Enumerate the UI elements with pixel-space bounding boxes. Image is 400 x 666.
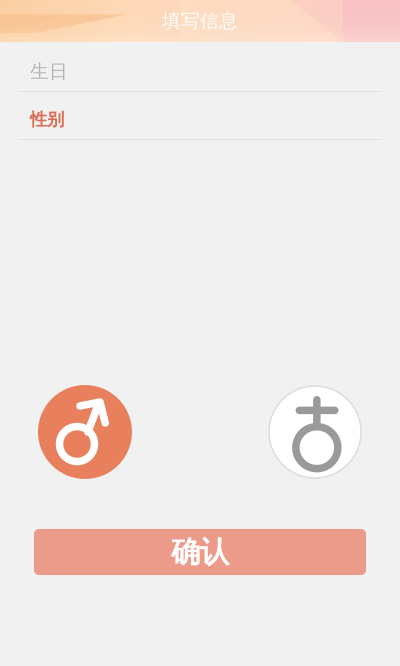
button[interactable]: Female — [268, 385, 362, 479]
staticText: 填写信息 — [162, 9, 238, 32]
button[interactable]: Male — [38, 385, 132, 479]
staticText: 确认 — [171, 534, 229, 570]
staticText: 生日 — [30, 60, 68, 83]
button[interactable]: 确认 — [34, 529, 366, 575]
staticText: 性别 — [30, 109, 64, 130]
